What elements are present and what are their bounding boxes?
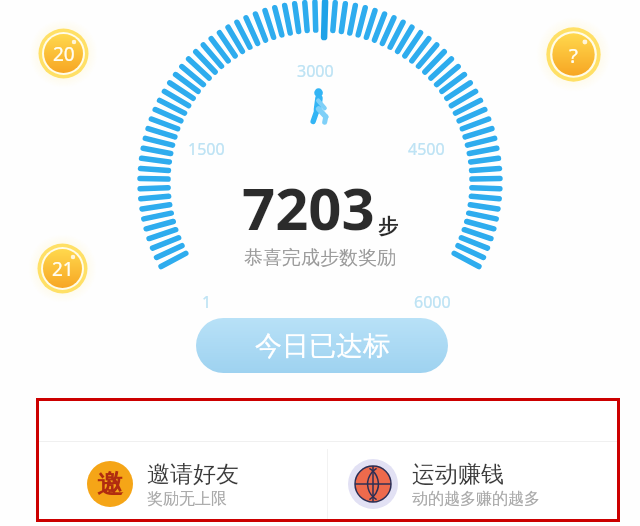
staticText: 6000: [414, 291, 451, 313]
button[interactable]: Help: [536, 17, 611, 92]
staticText: 7203: [242, 168, 375, 247]
staticText: 邀: [97, 468, 123, 501]
staticText: 步: [378, 214, 398, 239]
staticText: 3000: [297, 60, 334, 82]
button[interactable]: 运动赚钱: [328, 449, 617, 519]
staticText: 邀请好友: [147, 460, 239, 489]
button[interactable]: 邀: [39, 449, 327, 519]
staticText: 1500: [188, 138, 225, 160]
button[interactable]: Day 20 reward: [29, 19, 98, 88]
staticText: 1: [202, 291, 212, 313]
button[interactable]: 今日已达标: [196, 318, 448, 373]
staticText: 21: [52, 256, 74, 282]
staticText: 奖励无上限: [147, 489, 227, 509]
staticText: 4500: [408, 138, 445, 160]
staticText: 20: [53, 41, 75, 67]
staticText: 动的越多赚的越多: [412, 489, 540, 509]
other: Walking: [302, 88, 338, 124]
staticText: 恭喜完成步数奖励: [244, 246, 396, 270]
staticText: 今日已达标: [255, 329, 390, 363]
staticText: 运动赚钱: [412, 460, 504, 489]
button[interactable]: Day 21 reward: [28, 234, 97, 303]
staticText: ?: [569, 41, 578, 69]
